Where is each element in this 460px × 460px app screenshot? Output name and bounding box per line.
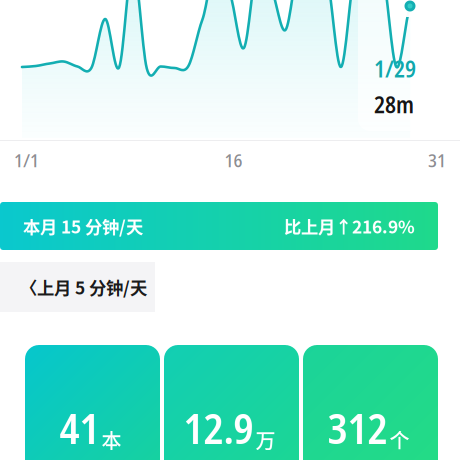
staticText: 比上月↑216.9% — [284, 213, 415, 239]
staticText: 41 — [59, 400, 99, 456]
staticText: 〈上月 5 分钟/天 — [20, 274, 147, 300]
staticText: 16 — [224, 147, 242, 173]
staticText: 1/29 — [374, 53, 416, 84]
button[interactable]: 41 — [25, 345, 160, 460]
staticText: 312 — [327, 400, 387, 456]
button[interactable]: 12.9 — [164, 345, 299, 460]
staticText: 万 — [255, 425, 275, 454]
staticText: 个 — [389, 425, 409, 454]
staticText: 本 — [101, 425, 121, 454]
button[interactable]: 本月 15 分钟/天 — [0, 202, 438, 250]
staticText: 12.9 — [183, 400, 253, 456]
button[interactable]: 312 — [303, 345, 438, 460]
button[interactable]: 〈上月 5 分钟/天 — [0, 262, 155, 312]
staticText: 31 — [428, 147, 446, 173]
staticText: 1/1 — [14, 147, 39, 173]
staticText: 本月 15 分钟/天 — [23, 213, 143, 239]
staticText: 28m — [374, 89, 414, 120]
